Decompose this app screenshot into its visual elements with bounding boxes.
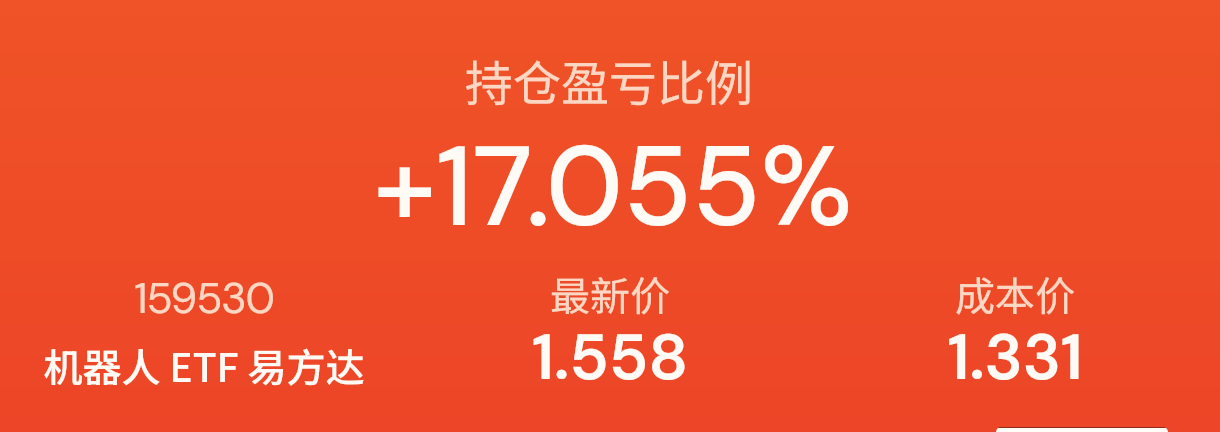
staticText: 成本价 (865, 265, 1165, 323)
staticText: 1.331 (865, 316, 1165, 399)
staticText: 机器人 ETF 易方达 (4, 337, 404, 393)
staticText: 1.558 (460, 316, 760, 399)
button[interactable]: 持仓盈亏比例 (313, 30, 913, 245)
button[interactable]: 成本价 (865, 258, 1165, 394)
staticText: +17.055% (313, 114, 913, 260)
button[interactable]: 最新价 (460, 258, 760, 394)
staticText: 持仓盈亏比例 (309, 45, 909, 115)
staticText: 159530 (4, 270, 404, 326)
button[interactable]: 159530 (4, 258, 404, 394)
staticText: 最新价 (460, 265, 760, 323)
button[interactable]: Open details sheet (996, 427, 1168, 432)
